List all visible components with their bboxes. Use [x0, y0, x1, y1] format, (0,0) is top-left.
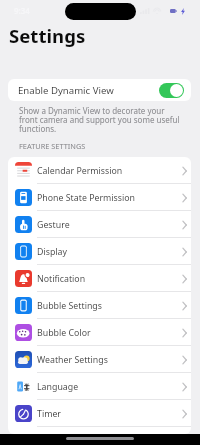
staticText: Phone State Permission	[37, 192, 135, 204]
staticText: Enable Dynamic View	[18, 84, 114, 97]
button[interactable]: Calendar Permission	[8, 157, 191, 184]
staticText: Weather Settings	[37, 354, 108, 366]
button[interactable]: Language	[8, 373, 191, 400]
staticText: FEATURE SETTINGS	[19, 141, 86, 151]
staticText: Display	[37, 246, 68, 258]
button[interactable]: Bubble Settings	[8, 292, 191, 319]
button[interactable]: Timer	[8, 400, 191, 427]
staticText: Calendar Permission	[37, 165, 123, 177]
staticText: Bubble Settings	[37, 300, 102, 312]
button[interactable]: Notification	[8, 265, 191, 292]
staticText: Settings	[9, 23, 86, 48]
staticText: Bubble Color	[37, 327, 91, 339]
staticText: Gesture	[37, 219, 70, 231]
staticText: Notification	[37, 273, 86, 285]
button[interactable]: Weather Settings	[8, 346, 191, 373]
button[interactable]: Bubble Color	[8, 319, 191, 346]
staticText: Show a Dynamic View to decorate your fro…	[19, 105, 180, 135]
staticText: Timer	[37, 408, 61, 420]
button[interactable]: Gesture	[8, 211, 191, 238]
button[interactable]: Enable Dynamic View	[8, 79, 191, 101]
button[interactable]: Display	[8, 238, 191, 265]
button[interactable]: Enable Dynamic View toggle	[159, 83, 184, 98]
staticText: Language	[37, 381, 79, 393]
button[interactable]: Phone State Permission	[8, 184, 191, 211]
